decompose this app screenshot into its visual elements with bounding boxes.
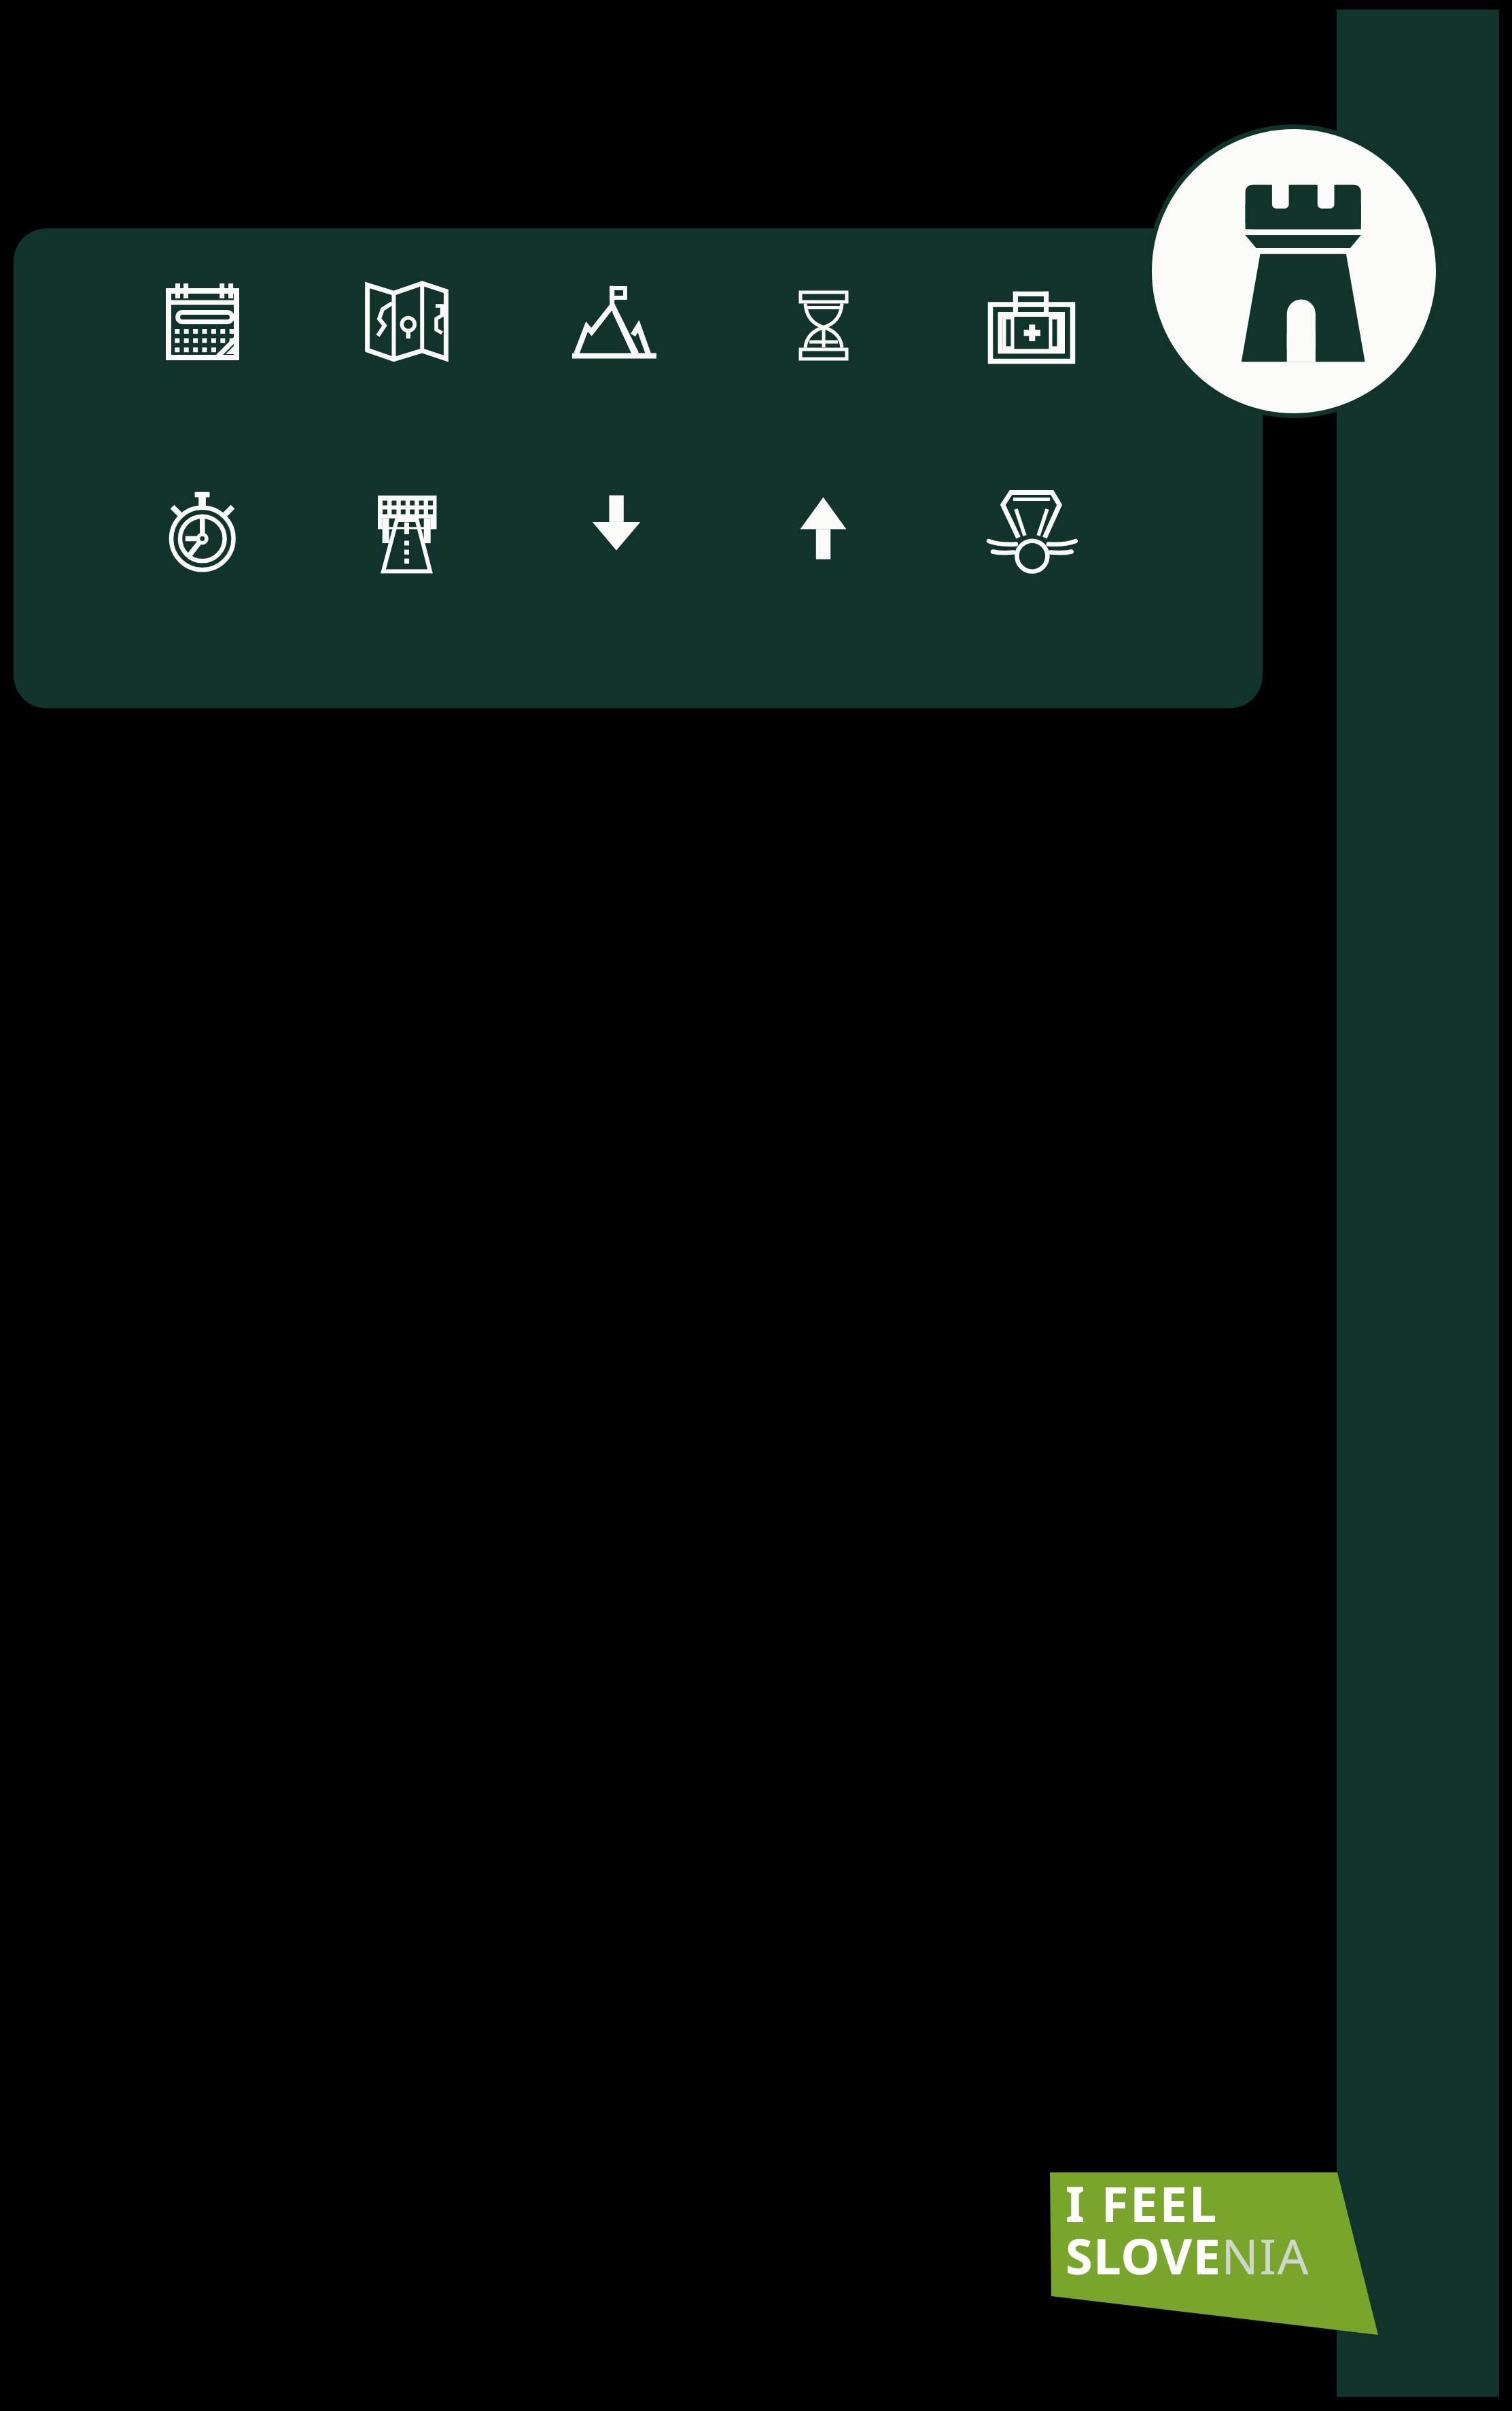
button[interactable] (368, 495, 445, 572)
button[interactable] (368, 283, 445, 360)
button[interactable] (993, 495, 1070, 572)
button[interactable] (1050, 2172, 1378, 2335)
button[interactable] (993, 283, 1070, 360)
button[interactable] (165, 283, 243, 360)
button[interactable] (576, 283, 654, 360)
button[interactable] (576, 495, 654, 572)
button[interactable] (784, 283, 861, 360)
button[interactable] (1152, 129, 1436, 413)
button[interactable] (784, 495, 861, 572)
button[interactable] (165, 495, 243, 572)
staticText: SLOVENIA (1066, 2222, 1309, 2289)
staticText: I FEEL (1066, 2170, 1219, 2236)
